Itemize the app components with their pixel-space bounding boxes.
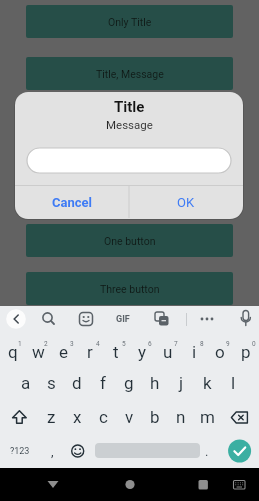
button[interactable]: q — [0, 335, 25, 368]
button[interactable]: w — [25, 335, 51, 368]
button[interactable]: m — [194, 400, 220, 434]
button[interactable]: Only Title — [26, 5, 233, 38]
button[interactable]: , — [39, 434, 65, 468]
staticText: 8 — [200, 340, 204, 348]
button[interactable]: GIF — [111, 308, 135, 330]
button[interactable]: t — [103, 335, 129, 368]
staticText: j — [179, 373, 184, 393]
staticText: w — [32, 342, 45, 362]
button[interactable] — [220, 434, 259, 468]
button[interactable]: Three button — [26, 272, 233, 305]
button[interactable]: y — [129, 335, 155, 368]
button[interactable]: n — [168, 400, 194, 434]
button[interactable] — [226, 472, 252, 498]
staticText: k — [203, 373, 212, 393]
button[interactable]: g — [116, 366, 142, 400]
staticText: 5 — [122, 340, 126, 348]
staticText: n — [176, 407, 186, 427]
staticText: s — [47, 373, 56, 393]
staticText: Cancel — [52, 195, 93, 210]
staticText: 1 — [18, 340, 22, 348]
button[interactable]: f — [90, 366, 116, 400]
staticText: Title, Message — [96, 68, 164, 80]
staticText: ?123 — [10, 446, 30, 457]
button[interactable] — [4, 308, 28, 330]
staticText: q — [8, 342, 18, 362]
staticText: z — [47, 407, 56, 427]
button[interactable]: . — [194, 434, 220, 468]
button[interactable]: v — [116, 400, 142, 434]
button[interactable]: r — [77, 335, 103, 368]
staticText: o — [215, 342, 225, 362]
staticText: i — [192, 342, 197, 362]
button[interactable]: b — [142, 400, 168, 434]
button[interactable]: u — [155, 335, 181, 368]
staticText: r — [87, 342, 93, 362]
button[interactable]: i — [181, 335, 207, 368]
staticText: y — [138, 342, 147, 362]
button[interactable]: c — [90, 400, 116, 434]
button[interactable]: x — [64, 400, 90, 434]
button[interactable]: One button — [26, 224, 233, 257]
button[interactable] — [37, 472, 69, 498]
staticText: d — [72, 373, 82, 393]
staticText: . — [205, 444, 209, 459]
button[interactable] — [233, 308, 257, 330]
button[interactable]: e — [51, 335, 77, 368]
button[interactable]: h — [142, 366, 168, 400]
staticText: OK — [177, 195, 195, 210]
staticText: 7 — [174, 340, 178, 348]
button[interactable]: j — [168, 366, 194, 400]
staticText: u — [163, 342, 173, 362]
staticText: e — [59, 342, 69, 362]
staticText: b — [150, 407, 160, 427]
staticText: h — [150, 373, 160, 393]
staticText: l — [231, 373, 236, 393]
button[interactable]: ?123 — [0, 434, 39, 468]
button[interactable] — [36, 308, 60, 330]
staticText: t — [113, 342, 119, 362]
button[interactable]: OK — [129, 186, 243, 218]
staticText: x — [73, 407, 82, 427]
staticText: 3 — [70, 340, 74, 348]
staticText: p — [241, 342, 251, 362]
button[interactable]: p — [233, 335, 259, 368]
button[interactable]: o — [207, 335, 233, 368]
staticText: Title — [114, 98, 145, 116]
button[interactable]: z — [39, 400, 64, 434]
staticText: 2 — [44, 340, 48, 348]
button[interactable] — [73, 308, 97, 330]
staticText: 6 — [148, 340, 152, 348]
button[interactable]: s — [38, 366, 64, 400]
button[interactable] — [27, 148, 231, 173]
staticText: Only Title — [108, 16, 152, 28]
button[interactable] — [220, 400, 259, 434]
staticText: Message — [106, 118, 153, 131]
staticText: v — [125, 407, 134, 427]
button[interactable] — [150, 308, 174, 330]
staticText: c — [99, 407, 108, 427]
staticText: g — [124, 373, 134, 393]
staticText: a — [21, 373, 31, 393]
staticText: 9 — [226, 340, 230, 348]
staticText: m — [200, 407, 215, 427]
staticText: 4 — [96, 340, 100, 348]
staticText: One button — [104, 235, 156, 247]
button[interactable] — [187, 472, 219, 498]
button[interactable]: l — [220, 366, 246, 400]
button[interactable]: Title, Message — [26, 57, 233, 90]
staticText: GIF — [116, 314, 130, 325]
staticText: f — [100, 373, 106, 393]
staticText: , — [51, 444, 54, 459]
button[interactable] — [65, 434, 91, 468]
button[interactable] — [195, 308, 219, 330]
button[interactable]: k — [194, 366, 220, 400]
button[interactable]: a — [13, 366, 38, 400]
button[interactable]: d — [64, 366, 90, 400]
button[interactable] — [114, 472, 146, 498]
staticText: 0 — [252, 340, 256, 348]
button[interactable] — [0, 400, 39, 434]
button[interactable]: Cancel — [15, 186, 129, 218]
staticText: Three button — [100, 283, 160, 295]
